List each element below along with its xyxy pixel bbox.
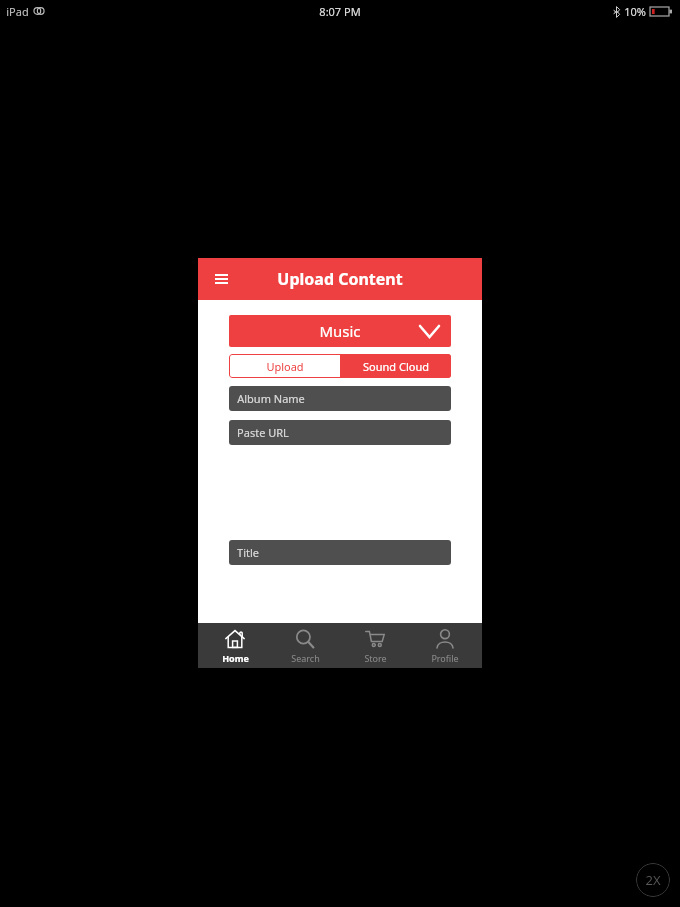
button[interactable]: Search (272, 623, 338, 668)
staticText: 2X (645, 871, 661, 889)
staticText: 8:07 PM (319, 4, 361, 19)
button[interactable]: Sound Cloud (340, 354, 451, 378)
button[interactable]: 2X (636, 863, 670, 897)
staticText: iPad (6, 4, 29, 19)
staticText: Upload Content (277, 268, 403, 290)
staticText: Sound Cloud (363, 359, 429, 374)
staticText: Music (319, 321, 361, 341)
staticText: Search (291, 652, 320, 664)
staticText: Store (364, 652, 387, 664)
button[interactable]: Home (202, 623, 268, 668)
staticText: Album Name (237, 391, 305, 406)
staticText: 10% (624, 4, 646, 19)
button[interactable]: Music (229, 315, 451, 347)
staticText: Upload (266, 359, 304, 374)
staticText: Home (222, 652, 249, 664)
button[interactable]: Title (229, 540, 451, 565)
button[interactable]: Store (342, 623, 408, 668)
button[interactable]: Upload (229, 354, 340, 378)
button[interactable]: Album Name (229, 386, 451, 411)
button[interactable]: Menu (210, 268, 232, 290)
staticText: Paste URL (237, 425, 289, 440)
staticText: Title (237, 545, 259, 560)
staticText: Profile (431, 652, 459, 664)
button[interactable]: Paste URL (229, 420, 451, 445)
other: Expand (420, 326, 439, 337)
button[interactable]: Profile (412, 623, 478, 668)
